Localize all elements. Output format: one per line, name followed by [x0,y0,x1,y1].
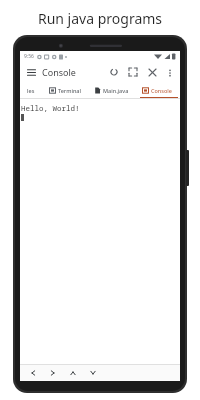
button[interactable]: Close [145,65,159,79]
button[interactable]: les [20,82,42,99]
button[interactable]: Refresh [107,65,121,79]
button[interactable]: Menu [24,65,38,79]
button[interactable]: Console [134,82,180,99]
button[interactable]: More options [163,66,176,79]
button[interactable]: Main.java [88,82,134,99]
button[interactable]: Previous [26,366,39,379]
button[interactable]: Terminal [42,82,88,99]
staticText: Terminal [58,87,81,94]
staticText: les [27,87,35,94]
staticText: Main.java [103,87,129,94]
button[interactable]: Fullscreen [126,65,140,79]
button[interactable]: Next [46,366,59,379]
staticText: Console [151,87,172,94]
staticText: Hello, World! [21,103,80,113]
button[interactable]: Up [66,366,79,379]
staticText: Console [42,66,76,78]
staticText: Run java programs [0,9,200,28]
button[interactable]: Down [86,366,99,379]
staticText: 9:56 [24,53,34,60]
